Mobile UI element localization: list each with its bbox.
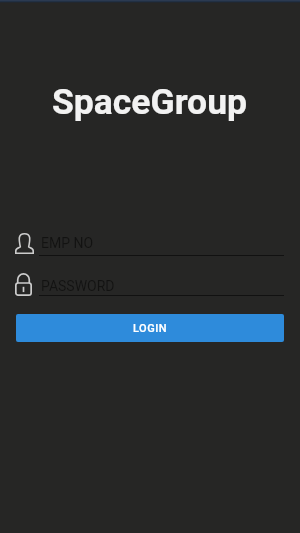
other: Employee number [15, 233, 34, 254]
staticText: SpaceGroup [52, 81, 248, 123]
button[interactable]: LOGIN [16, 314, 284, 342]
button[interactable]: Employee number [15, 231, 284, 256]
staticText: EMP NO [41, 235, 94, 251]
button[interactable]: Password [15, 272, 284, 296]
staticText: PASSWORD [41, 278, 115, 294]
other: Password [15, 273, 32, 296]
staticText: LOGIN [133, 322, 168, 335]
